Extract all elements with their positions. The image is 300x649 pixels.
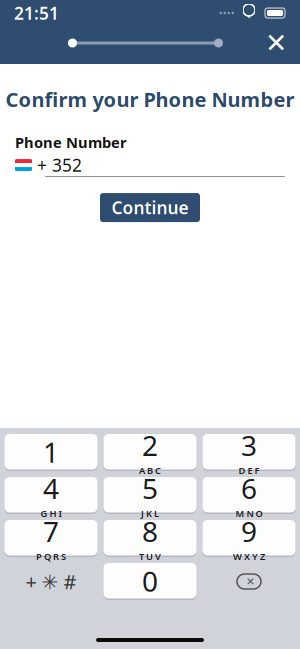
staticText: A B C [139,464,161,476]
staticText: P Q R S [36,550,66,562]
staticText: 9 [241,512,257,550]
staticText: + ✳ # [25,568,76,595]
button[interactable]: 9 [202,520,295,557]
staticText: 6 [241,469,257,507]
staticText: 2 [142,426,158,464]
staticText: Confirm your Phone Number [5,86,294,113]
button[interactable]: 1 [4,434,97,471]
button[interactable]: 5 [103,477,196,514]
staticText: G H I [40,507,61,519]
staticText: 1 [43,433,59,471]
button[interactable]: 0 [103,563,196,600]
button[interactable]: 3 [202,434,295,471]
button[interactable]: 7 [4,520,97,557]
button[interactable]: Plus star pound [4,566,97,596]
button[interactable]: 6 [202,477,295,514]
button[interactable]: Close [258,25,294,61]
staticText: 3 [241,426,257,464]
button[interactable]: Delete [202,563,295,600]
staticText: 8 [142,512,158,550]
staticText: ✕ [265,28,287,58]
button[interactable]: 8 [103,520,196,557]
staticText: Continue [111,196,188,219]
button[interactable]: 2 [103,434,196,471]
staticText: Phone Number [15,133,127,152]
button[interactable]: 4 [4,477,97,514]
staticText: 7 [43,512,59,550]
staticText: 21:51 [14,1,59,24]
staticText: ✕ [246,575,255,587]
staticText: W X Y Z [233,550,265,562]
staticText: T U V [139,550,161,562]
staticText: 0 [142,562,158,600]
button[interactable]: Continue [100,193,200,222]
staticText: J K L [141,507,159,519]
staticText: 4 [43,469,59,507]
staticText: + 352 [37,153,82,176]
staticText: 5 [142,469,158,507]
staticText: D E F [238,464,259,476]
staticText: M N O [235,507,262,519]
